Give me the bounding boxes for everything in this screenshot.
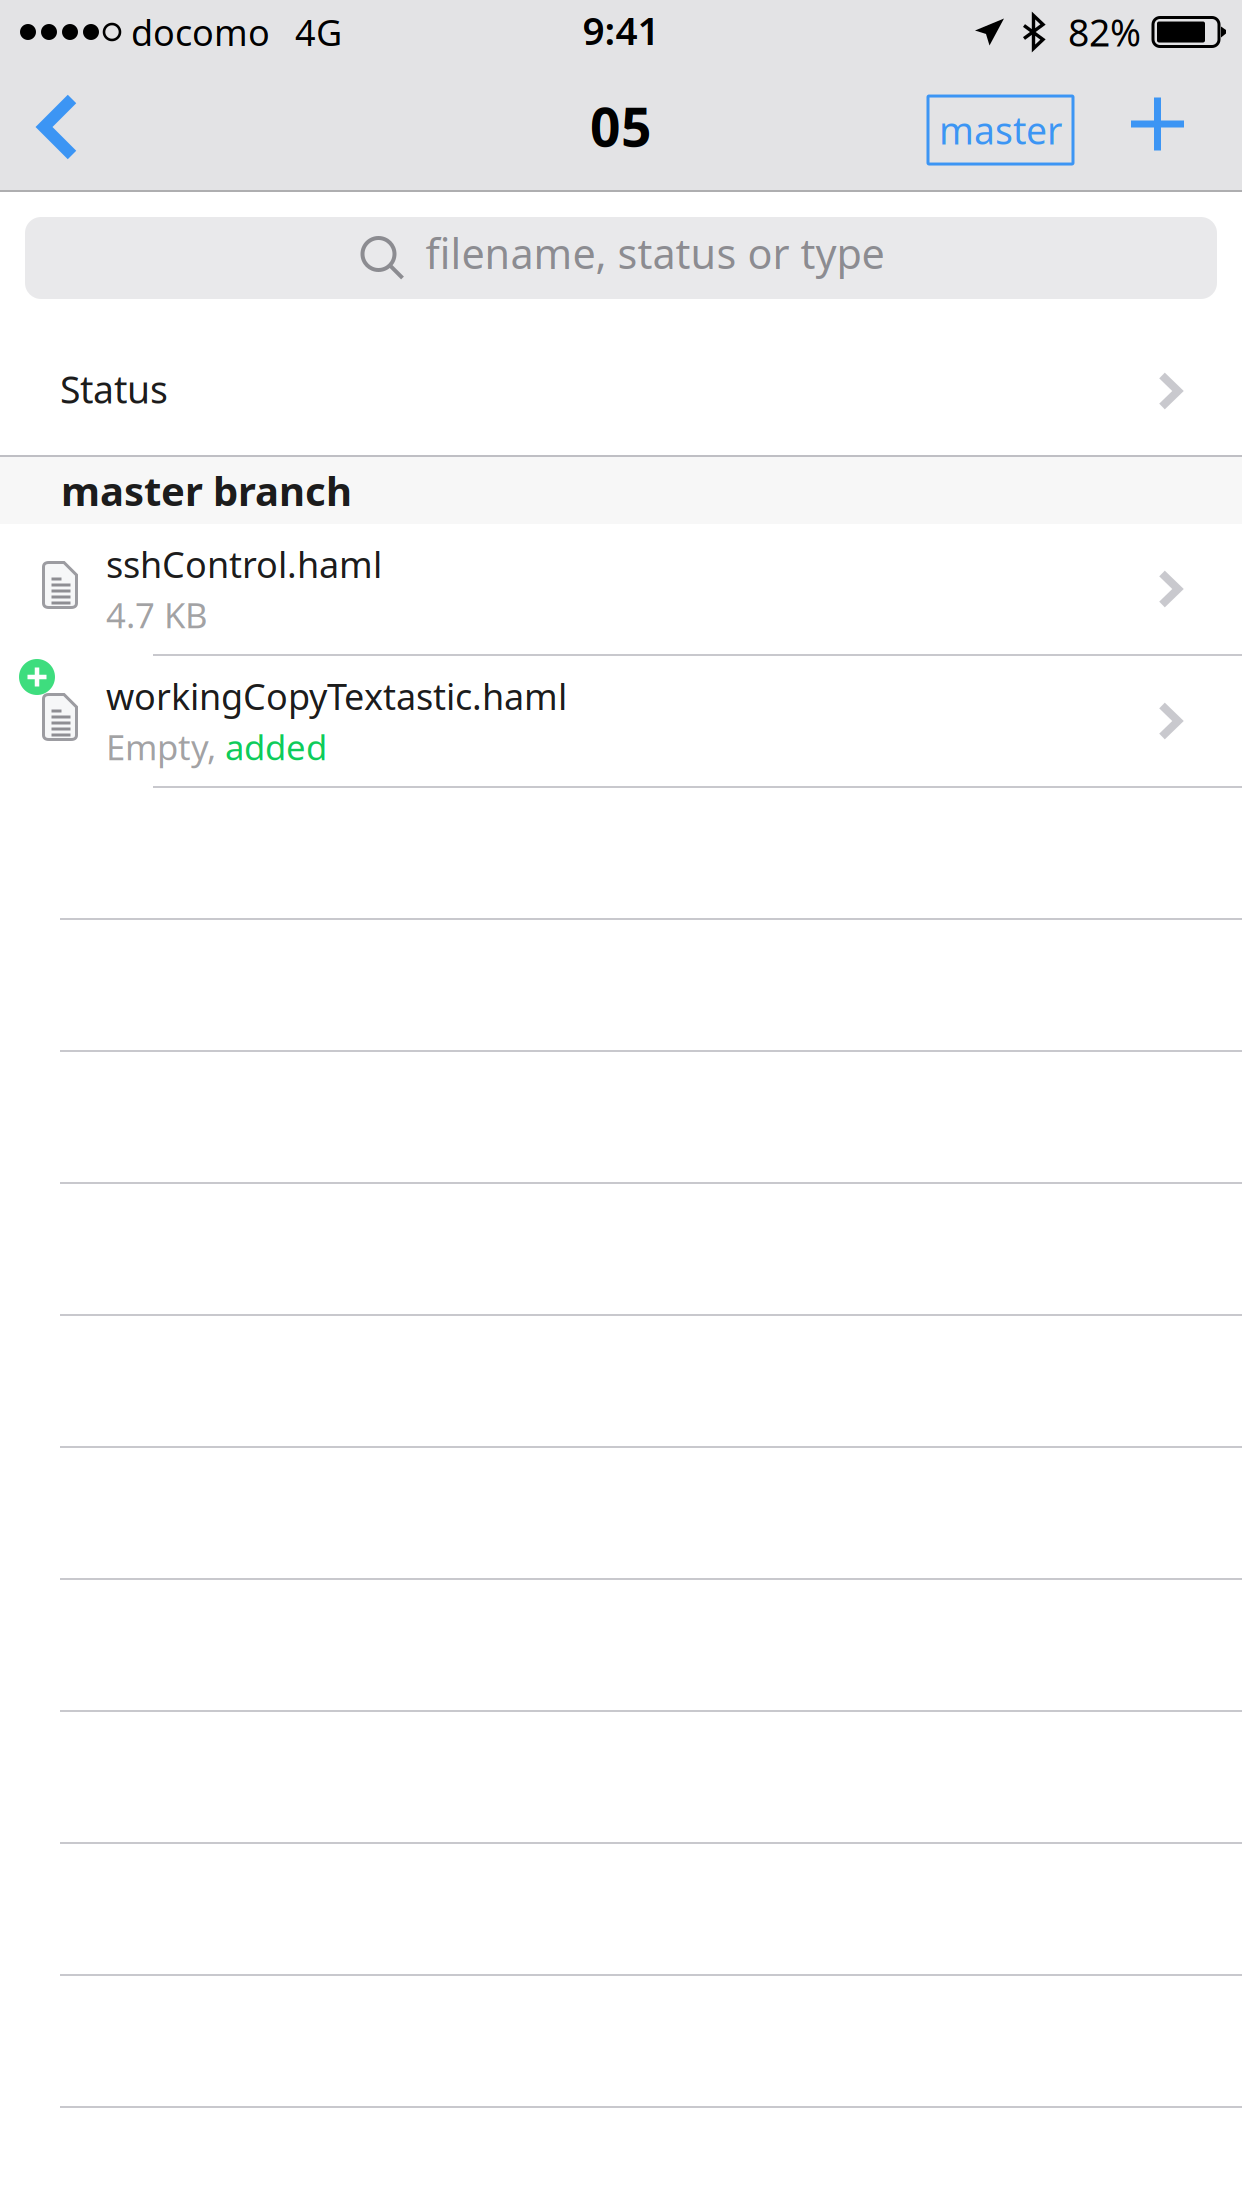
staticText: 9:41	[582, 4, 659, 56]
staticText: Status	[60, 364, 168, 414]
button[interactable]: Back	[0, 70, 130, 190]
staticText: master	[939, 105, 1062, 155]
staticText: 82%	[1068, 7, 1141, 57]
staticText: workingCopyTextastic.haml	[106, 672, 567, 720]
button[interactable]: workingCopyTextastic.haml	[0, 656, 1242, 786]
button[interactable]: Add	[1073, 70, 1242, 190]
staticText: sshControl.haml	[106, 540, 382, 588]
button[interactable]: sshControl.haml	[0, 524, 1242, 654]
button[interactable]: master	[928, 96, 1073, 164]
staticText: 4.7 KB	[106, 592, 208, 638]
button[interactable]: Status	[0, 301, 1242, 455]
staticText: filename, status or type	[425, 226, 884, 280]
staticText: docomo	[131, 8, 270, 56]
button[interactable]: Search filename, status or type	[25, 217, 1217, 299]
staticText: 4G	[295, 8, 342, 56]
staticText: Empty,	[106, 724, 216, 770]
staticText: 05	[590, 91, 652, 161]
staticText: master branch	[61, 464, 352, 517]
staticText: added	[225, 724, 327, 770]
